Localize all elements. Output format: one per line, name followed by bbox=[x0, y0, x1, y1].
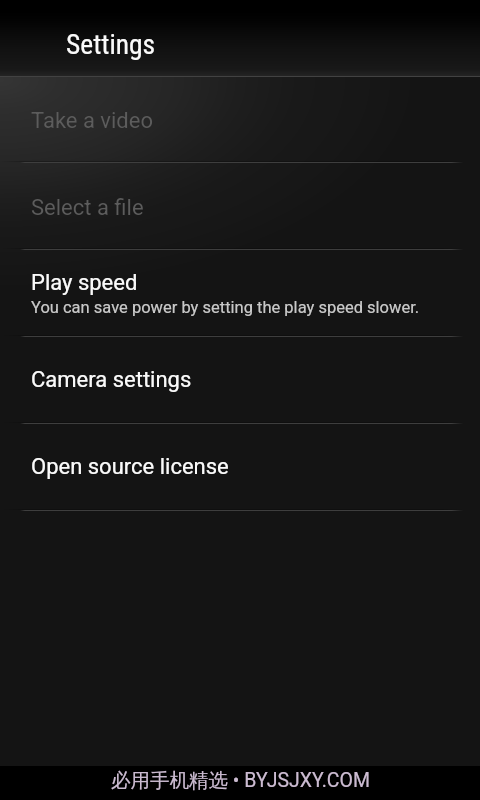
staticText: Settings bbox=[66, 28, 156, 60]
button[interactable]: Take a video bbox=[0, 84, 480, 161]
button[interactable]: Play speed bbox=[0, 251, 480, 335]
staticText: 必用手机精选 • BYJSJXY.COM bbox=[111, 768, 370, 793]
staticText: Take a video bbox=[31, 108, 153, 134]
staticText: Select a file bbox=[31, 195, 144, 221]
staticText: Camera settings bbox=[31, 367, 192, 393]
button[interactable]: Camera settings bbox=[0, 338, 480, 422]
staticText: You can save power by setting the play s… bbox=[31, 298, 420, 317]
staticText: Open source license bbox=[31, 454, 229, 480]
staticText: Play speed bbox=[31, 270, 138, 296]
button[interactable]: Select a file bbox=[0, 164, 480, 248]
button[interactable]: Open source license bbox=[0, 425, 480, 509]
